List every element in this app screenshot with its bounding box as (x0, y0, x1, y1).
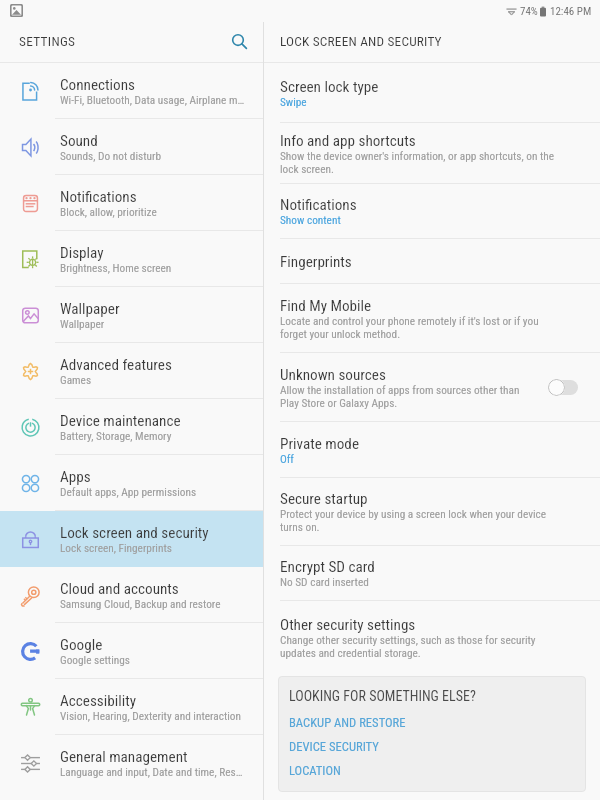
staticText: Language and input, Date and time, Res… (60, 766, 243, 779)
staticText: Block, allow, prioritize (60, 206, 157, 219)
staticText: LOOKING FOR SOMETHING ELSE? (289, 688, 476, 704)
staticText: Screen lock type (280, 78, 379, 96)
staticText: Change other security settings, such as … (280, 634, 564, 660)
staticText: Google settings (60, 654, 130, 667)
button[interactable]: Sound (0, 119, 263, 175)
staticText: Other security settings (280, 616, 416, 634)
staticText: Info and app shortcuts (280, 132, 416, 150)
button[interactable]: LOCATION (289, 763, 341, 778)
button[interactable]: Notifications (264, 184, 600, 239)
staticText: Games (60, 374, 92, 387)
staticText: General management (60, 748, 188, 766)
staticText: Show the device owner's information, or … (280, 150, 564, 176)
button[interactable]: Wallpaper (0, 287, 263, 343)
staticText: Display (60, 244, 104, 262)
button[interactable]: Unknown sources (264, 353, 600, 422)
staticText: Cloud and accounts (60, 580, 179, 598)
staticText: Show content (280, 214, 341, 227)
staticText: Unknown sources (280, 366, 386, 384)
staticText: Find My Mobile (280, 297, 372, 315)
staticText: Locate and control your phone remotely i… (280, 315, 564, 341)
staticText: Sound (60, 132, 98, 150)
staticText: Battery, Storage, Memory (60, 430, 172, 443)
staticText: Default apps, App permissions (60, 486, 197, 499)
button[interactable]: Lock screen and security (0, 511, 263, 567)
staticText: Samsung Cloud, Backup and restore (60, 598, 221, 611)
staticText: Accessibility (60, 692, 137, 710)
button[interactable]: Secure startup (264, 478, 600, 546)
button[interactable]: Apps (0, 455, 263, 511)
staticText: Encrypt SD card (280, 558, 375, 576)
button[interactable]: Notifications (0, 175, 263, 231)
button[interactable]: Other security settings (264, 601, 600, 675)
button[interactable]: Cloud and accounts (0, 567, 263, 623)
button[interactable]: Info and app shortcuts (264, 123, 600, 184)
staticText: Lock screen, Fingerprints (60, 542, 172, 555)
button[interactable]: Screen lock type (264, 63, 600, 123)
button[interactable]: General management (0, 735, 263, 791)
button[interactable]: Fingerprints (264, 239, 600, 284)
button[interactable]: Unknown sources switch, off (548, 379, 578, 396)
button[interactable]: Device maintenance (0, 399, 263, 455)
staticText: Private mode (280, 435, 360, 453)
staticText: Brightness, Home screen (60, 262, 172, 275)
staticText: Notifications (60, 188, 137, 206)
button[interactable]: Advanced features (0, 343, 263, 399)
staticText: Protect your device by using a screen lo… (280, 508, 564, 534)
button[interactable]: Connections (0, 63, 263, 119)
button[interactable]: Search (226, 28, 252, 54)
button[interactable]: Find My Mobile (264, 284, 600, 353)
staticText: Notifications (280, 196, 357, 214)
staticText: Advanced features (60, 356, 172, 374)
staticText: Wallpaper (60, 300, 120, 318)
staticText: Device maintenance (60, 412, 181, 430)
button[interactable]: Google (0, 623, 263, 679)
staticText: Fingerprints (280, 253, 352, 271)
staticText: Vision, Hearing, Dexterity and interacti… (60, 710, 241, 723)
button[interactable]: BACKUP AND RESTORE (289, 715, 406, 730)
button[interactable]: Display (0, 231, 263, 287)
staticText: Wallpaper (60, 318, 105, 331)
staticText: Secure startup (280, 490, 368, 508)
staticText: Off (280, 453, 294, 466)
staticText: SETTINGS (19, 34, 76, 50)
staticText: 12:46 PM (550, 5, 592, 18)
staticText: Connections (60, 76, 135, 94)
button[interactable]: Private mode (264, 422, 600, 478)
staticText: LOCK SCREEN AND SECURITY (280, 34, 442, 50)
button[interactable]: Encrypt SD card (264, 546, 600, 601)
staticText: No SD card inserted (280, 576, 369, 589)
staticText: Lock screen and security (60, 524, 209, 542)
staticText: Swipe (280, 96, 307, 109)
staticText: Allow the installation of apps from sour… (280, 384, 538, 410)
button[interactable]: DEVICE SECURITY (289, 739, 379, 754)
staticText: Apps (60, 468, 91, 486)
staticText: 74% (520, 5, 538, 18)
staticText: Google (60, 636, 103, 654)
staticText: Sounds, Do not disturb (60, 150, 161, 163)
staticText: Wi-Fi, Bluetooth, Data usage, Airplane m… (60, 94, 245, 107)
button[interactable]: Accessibility (0, 679, 263, 735)
